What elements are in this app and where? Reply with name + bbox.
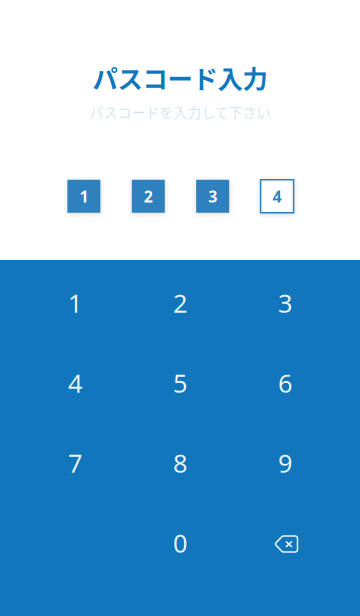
button[interactable]: 4 <box>22 343 127 423</box>
staticText: 0 <box>173 526 187 560</box>
staticText: 9 <box>278 446 292 480</box>
button[interactable]: 4 <box>261 180 294 213</box>
button[interactable]: Delete <box>232 503 337 583</box>
button[interactable]: 5 <box>127 343 232 423</box>
button[interactable]: 2 <box>127 263 232 343</box>
staticText: 6 <box>278 366 292 400</box>
staticText: 7 <box>68 446 82 480</box>
button[interactable]: 8 <box>127 423 232 503</box>
button[interactable]: 3 <box>232 263 337 343</box>
staticText: 1 <box>79 186 88 207</box>
staticText: 1 <box>68 286 82 320</box>
staticText: 3 <box>278 286 292 320</box>
button[interactable]: 1 <box>67 180 100 213</box>
staticText: 5 <box>173 366 187 400</box>
button[interactable]: 7 <box>22 423 127 503</box>
staticText: 4 <box>273 186 282 207</box>
staticText: 2 <box>173 286 187 320</box>
staticText: 4 <box>68 366 82 400</box>
button[interactable]: 6 <box>232 343 337 423</box>
staticText: パスコード入力 <box>92 59 267 96</box>
button[interactable]: 0 <box>127 503 232 583</box>
button[interactable]: 3 <box>196 180 229 213</box>
staticText: パスコードを入力して下さい <box>89 102 270 122</box>
button[interactable]: 9 <box>232 423 337 503</box>
button[interactable]: 1 <box>22 263 127 343</box>
button[interactable]: 2 <box>132 180 165 213</box>
staticText: 8 <box>173 446 187 480</box>
staticText: 3 <box>208 186 217 207</box>
staticText: 2 <box>144 186 153 207</box>
